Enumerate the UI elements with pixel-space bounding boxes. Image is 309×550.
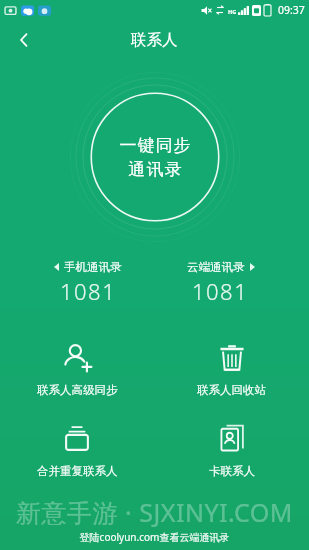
staticText: 合并重复联系人 (37, 464, 118, 478)
button[interactable]: 合并重复联系人 (0, 419, 154, 482)
staticText: 通讯录 (128, 159, 182, 180)
button[interactable]: 联系人回收站 (154, 338, 309, 401)
button[interactable]: 手机通讯录 (22, 258, 154, 308)
staticText: 联系人高级同步 (37, 383, 118, 397)
staticText: 手机通讯录 (64, 260, 122, 274)
staticText: 1081 (192, 276, 249, 306)
staticText: 登陆coolyun.com查看云端通讯录 (0, 530, 309, 544)
button[interactable]: 联系人高级同步 (0, 338, 154, 401)
button[interactable]: Back (6, 22, 42, 58)
staticText: 联系人 (131, 30, 178, 50)
button[interactable]: 卡联系人 (154, 419, 309, 482)
staticText: HG (228, 8, 237, 15)
staticText: 1081 (60, 276, 117, 306)
staticText: 云端通讯录 (187, 260, 245, 274)
button[interactable]: 一键同步 (70, 72, 240, 242)
staticText: 一键同步 (119, 135, 191, 156)
staticText: 卡联系人 (209, 464, 255, 478)
staticText: 新意手游 · SJXINYI.COM (0, 495, 309, 529)
staticText: 09:37 (278, 3, 305, 17)
button[interactable]: 云端通讯录 (154, 258, 287, 308)
staticText: 联系人回收站 (197, 383, 266, 397)
